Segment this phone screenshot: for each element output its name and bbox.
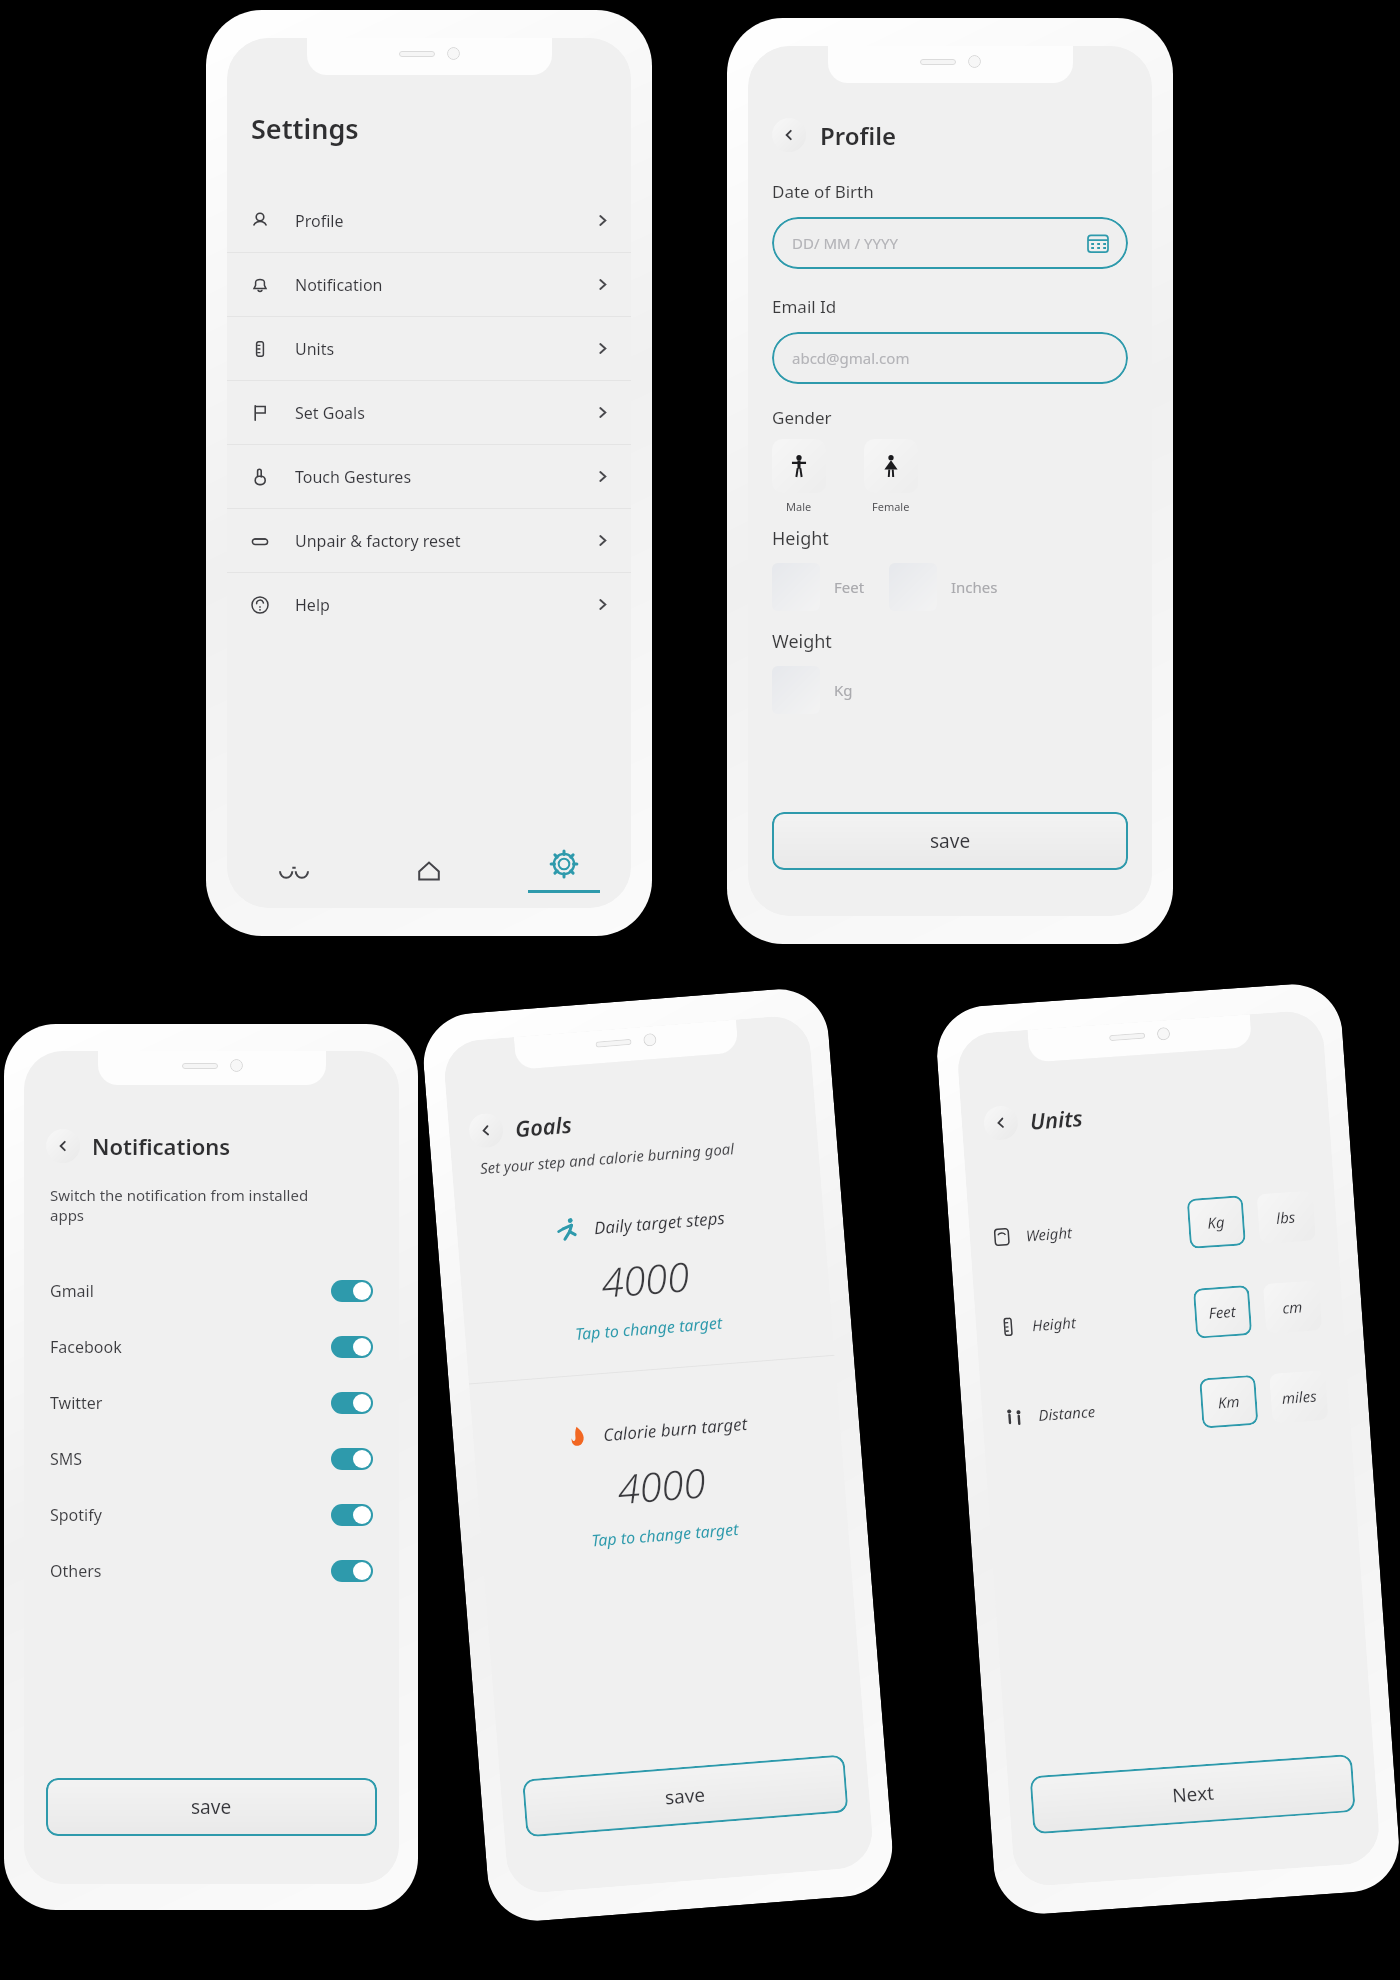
button[interactable]: Touch Gestures	[227, 445, 631, 508]
staticText: Tap to change target	[574, 1311, 724, 1345]
button[interactable]: Help	[227, 573, 631, 636]
button[interactable]: save	[46, 1778, 377, 1836]
button[interactable]: Notification	[227, 253, 631, 316]
staticText: miles	[1281, 1385, 1317, 1408]
staticText: Daily target steps	[593, 1206, 726, 1239]
button[interactable]: cm	[1263, 1280, 1322, 1334]
staticText: Kg	[834, 680, 853, 700]
staticText: Date of Birth	[772, 180, 874, 203]
staticText: Goals	[514, 1109, 573, 1143]
staticText: Feet	[834, 577, 865, 597]
button[interactable]: Back	[772, 118, 806, 152]
staticText: Weight	[772, 629, 832, 654]
button[interactable]: Tap to change target	[574, 1311, 724, 1345]
staticText: Set your step and calorie burning goal	[479, 1138, 735, 1178]
button[interactable]: DD/ MM / YYYY	[772, 217, 1128, 269]
staticText: Profile	[820, 119, 897, 152]
button[interactable]: save	[522, 1754, 849, 1837]
button[interactable]: save	[772, 812, 1128, 870]
staticText: 4000	[615, 1454, 707, 1515]
button[interactable]: Male	[772, 439, 826, 493]
staticText: Notification	[295, 274, 383, 296]
button[interactable]: Glasses	[227, 834, 361, 908]
staticText: Calorie burn target	[602, 1412, 749, 1446]
staticText: Settings	[251, 110, 359, 147]
staticText: save	[664, 1781, 707, 1810]
button[interactable]: Unpair & factory reset	[227, 509, 631, 572]
button[interactable]: Gmail	[46, 1267, 377, 1315]
button[interactable]: Facebook	[46, 1323, 377, 1371]
staticText: Email Id	[772, 295, 837, 318]
staticText: Twitter	[50, 1392, 103, 1414]
button[interactable]: Profile	[227, 189, 631, 252]
button[interactable]: Units	[227, 317, 631, 380]
button[interactable]: Back	[46, 1129, 80, 1163]
staticText: Height	[772, 526, 829, 551]
staticText: Male	[786, 499, 812, 514]
button[interactable]: miles	[1269, 1370, 1328, 1424]
button[interactable]: Back	[983, 1105, 1019, 1141]
staticText: SMS	[50, 1448, 83, 1470]
button[interactable]: Twitter	[46, 1379, 377, 1427]
button[interactable]: Home	[361, 834, 496, 908]
staticText: DD/ MM / YYYY	[792, 233, 898, 253]
staticText: save	[930, 828, 971, 854]
button[interactable]: lbs	[1256, 1190, 1316, 1244]
staticText: lbs	[1275, 1206, 1297, 1228]
button[interactable]: Set Goals	[227, 381, 631, 444]
button[interactable]: Km	[1199, 1375, 1259, 1428]
button[interactable]: Spotify	[46, 1491, 377, 1539]
staticText: Set Goals	[295, 402, 365, 424]
button[interactable]: Female	[864, 439, 918, 493]
staticText: Profile	[295, 210, 344, 232]
staticText: Female	[872, 499, 910, 514]
staticText: Units	[1029, 1102, 1084, 1136]
button[interactable]: Back	[468, 1112, 504, 1149]
staticText: 4000	[599, 1248, 691, 1309]
staticText: Feet	[1208, 1301, 1237, 1323]
staticText: Distance	[1038, 1401, 1096, 1425]
button[interactable]: Next	[1029, 1754, 1356, 1834]
staticText: save	[191, 1794, 232, 1820]
staticText: Km	[1217, 1391, 1240, 1412]
staticText: Others	[50, 1560, 102, 1582]
button[interactable]: SMS	[46, 1435, 377, 1483]
staticText: Next	[1171, 1780, 1215, 1809]
staticText: Switch the notification from installed a…	[50, 1185, 343, 1225]
staticText: Facebook	[50, 1336, 122, 1358]
staticText: Kg	[1207, 1211, 1226, 1233]
button[interactable]: Kg	[1187, 1195, 1246, 1249]
button[interactable]: Others	[46, 1547, 377, 1595]
staticText: Notifications	[92, 1131, 231, 1161]
staticText: Height	[1031, 1312, 1077, 1335]
staticText: Touch Gestures	[295, 466, 412, 488]
staticText: cm	[1282, 1296, 1303, 1318]
staticText: Tap to change target	[591, 1518, 740, 1551]
staticText: Units	[295, 338, 335, 360]
button[interactable]: abcd@gmal.com	[772, 332, 1128, 384]
button[interactable]: Feet	[1193, 1285, 1252, 1339]
staticText: abcd@gmal.com	[792, 348, 910, 368]
staticText: Inches	[951, 577, 998, 597]
button[interactable]: Settings	[496, 834, 631, 908]
staticText: Gmail	[50, 1280, 94, 1302]
button[interactable]: Tap to change target	[591, 1518, 740, 1551]
staticText: Spotify	[50, 1504, 102, 1526]
staticText: Gender	[772, 406, 832, 429]
staticText: Unpair & factory reset	[295, 530, 461, 552]
staticText: Weight	[1025, 1222, 1073, 1245]
staticText: Help	[295, 594, 330, 616]
